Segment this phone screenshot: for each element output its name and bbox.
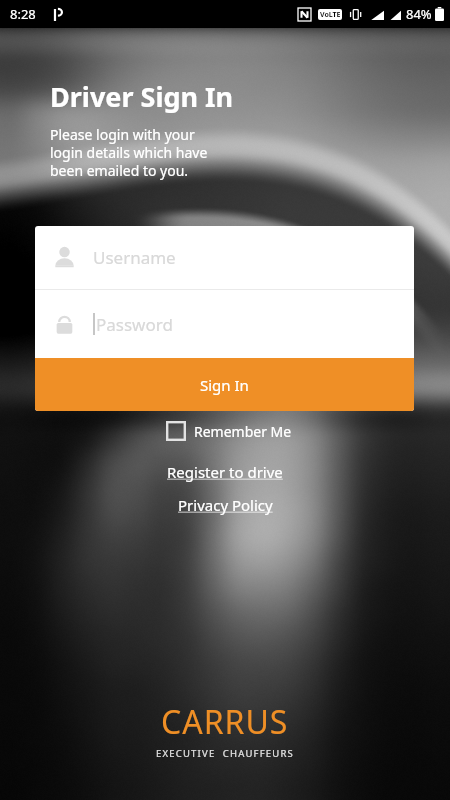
staticText: Please login with your login details whi… — [50, 125, 208, 180]
staticText: CARRUS — [161, 700, 289, 744]
staticText: Password — [96, 313, 173, 336]
staticText: Driver Sign In — [50, 78, 234, 115]
staticText: Remember Me — [194, 422, 292, 441]
staticText: 8:28 — [10, 5, 36, 23]
other: Parking — [53, 8, 66, 21]
staticText: EXECUTIVE CHAUFFEURS — [156, 747, 294, 760]
button[interactable]: Password — [51, 290, 414, 358]
button[interactable]: Register to drive — [167, 462, 283, 482]
button[interactable]: Remember Me — [166, 421, 292, 441]
button[interactable]: Username — [51, 226, 414, 289]
button[interactable]: Sign In — [35, 358, 414, 411]
staticText: Username — [93, 246, 176, 269]
staticText: Sign In — [200, 375, 249, 395]
staticText: 84% — [406, 5, 432, 23]
staticText: VoLTE — [320, 10, 341, 20]
button[interactable]: Privacy Policy — [178, 495, 273, 515]
